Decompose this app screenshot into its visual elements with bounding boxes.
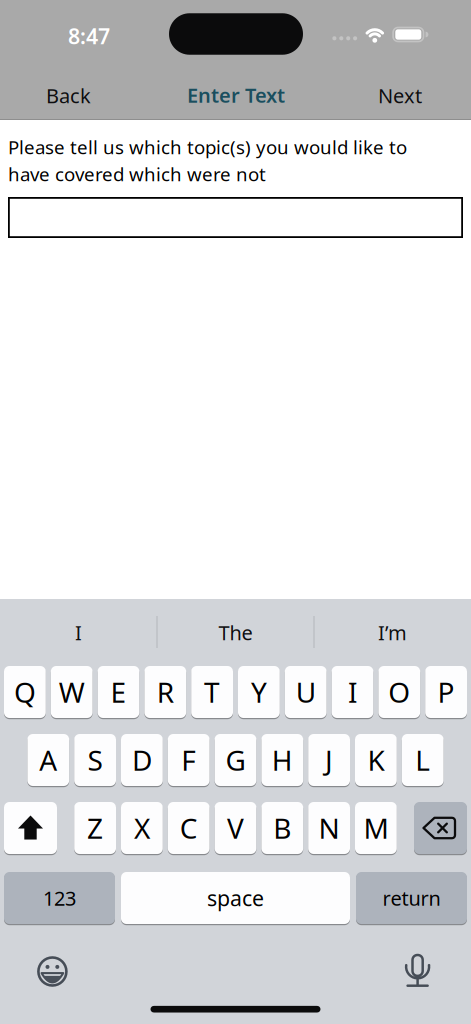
button[interactable]: Delete xyxy=(414,802,467,854)
staticText: Back xyxy=(46,82,91,109)
staticText: I’m xyxy=(378,619,407,646)
button[interactable]: H xyxy=(261,734,303,786)
button[interactable]: T xyxy=(191,666,233,718)
button[interactable]: L xyxy=(402,734,444,786)
staticText: V xyxy=(227,809,244,847)
staticText: 123 xyxy=(43,885,76,911)
button[interactable]: Back xyxy=(36,82,101,109)
button[interactable]: Shift xyxy=(4,802,57,854)
staticText: Y xyxy=(251,673,267,711)
button[interactable]: J xyxy=(308,734,350,786)
button[interactable]: A xyxy=(27,734,69,786)
button[interactable]: M xyxy=(355,802,397,854)
button[interactable]: I xyxy=(332,666,373,718)
button[interactable]: Emoji xyxy=(35,954,69,988)
button[interactable]: space xyxy=(121,872,350,924)
button[interactable]: W xyxy=(51,666,93,718)
staticText: P xyxy=(438,673,455,711)
button[interactable]: Next xyxy=(368,82,432,109)
button[interactable]: K xyxy=(355,734,397,786)
button[interactable]: 123 xyxy=(4,872,115,924)
button[interactable]: G xyxy=(215,734,256,786)
staticText: X xyxy=(134,809,150,847)
staticText: The xyxy=(218,619,252,646)
staticText: R xyxy=(157,673,174,711)
staticText: Z xyxy=(87,809,103,847)
button[interactable]: Y xyxy=(238,666,280,718)
button[interactable]: I xyxy=(0,599,157,666)
staticText: return xyxy=(382,885,440,911)
button[interactable]: D xyxy=(121,734,163,786)
staticText: K xyxy=(367,741,384,779)
button[interactable]: Q xyxy=(4,666,46,718)
staticText: M xyxy=(363,809,388,847)
button[interactable]: N xyxy=(308,802,350,854)
button[interactable]: Dictate xyxy=(401,954,435,988)
staticText: Q xyxy=(14,673,36,711)
staticText: C xyxy=(180,809,198,847)
button[interactable]: C xyxy=(168,802,210,854)
button[interactable]: S xyxy=(74,734,116,786)
button[interactable]: O xyxy=(378,666,420,718)
staticText: E xyxy=(110,673,126,711)
staticText: U xyxy=(296,673,316,711)
button[interactable]: return xyxy=(356,872,467,924)
staticText: F xyxy=(181,741,196,779)
button[interactable]: X xyxy=(121,802,163,854)
staticText: B xyxy=(273,809,291,847)
staticText: I xyxy=(348,673,357,711)
button[interactable]: The xyxy=(157,599,314,666)
staticText: H xyxy=(272,741,293,779)
staticText: have covered which were not xyxy=(8,161,266,186)
button[interactable]: B xyxy=(261,802,303,854)
staticText: Next xyxy=(378,82,422,109)
staticText: Enter Text xyxy=(187,82,285,108)
button[interactable]: Text field xyxy=(8,197,463,238)
button[interactable]: U xyxy=(285,666,327,718)
staticText: L xyxy=(415,741,430,779)
staticText: N xyxy=(319,809,340,847)
staticText: 8:47 xyxy=(68,22,110,50)
staticText: D xyxy=(132,741,152,779)
button[interactable]: I’m xyxy=(314,599,471,666)
button[interactable]: V xyxy=(215,802,256,854)
staticText: A xyxy=(39,741,57,779)
button[interactable]: R xyxy=(144,666,186,718)
button[interactable]: E xyxy=(98,666,139,718)
staticText: S xyxy=(88,741,103,779)
staticText: G xyxy=(225,741,245,779)
staticText: O xyxy=(388,673,410,711)
button[interactable]: F xyxy=(168,734,210,786)
staticText: W xyxy=(59,673,85,711)
staticText: J xyxy=(325,741,333,779)
staticText: Please tell us which topic(s) you would … xyxy=(8,134,407,159)
staticText: I xyxy=(75,619,82,646)
button[interactable]: P xyxy=(425,666,467,718)
staticText: T xyxy=(204,673,220,711)
button[interactable]: Z xyxy=(74,802,116,854)
staticText: space xyxy=(207,884,264,912)
